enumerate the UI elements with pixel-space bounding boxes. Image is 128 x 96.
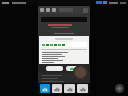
button[interactable] <box>39 36 89 64</box>
button[interactable]: Tool <box>46 8 50 12</box>
other: Dial <box>73 65 88 80</box>
button[interactable]: Library <box>52 84 62 93</box>
button[interactable]: Tool <box>40 8 44 12</box>
other: Badge <box>115 84 124 93</box>
button[interactable]: Tool <box>52 8 56 12</box>
button[interactable]: More <box>77 84 88 93</box>
button[interactable]: Confirm <box>66 66 83 71</box>
button[interactable]: Toolbar <box>38 6 90 14</box>
button[interactable]: Home <box>40 84 50 93</box>
button[interactable]: Cancel <box>46 66 63 71</box>
button[interactable]: Stats <box>64 84 75 93</box>
